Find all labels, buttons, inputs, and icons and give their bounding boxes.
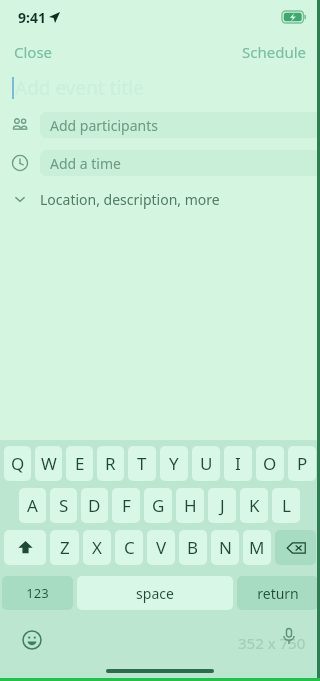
button[interactable]: E <box>66 446 93 481</box>
staticText: 352 x 750 <box>238 633 306 653</box>
button[interactable]: Schedule <box>228 36 320 68</box>
staticText: F <box>122 494 131 517</box>
staticText: Schedule <box>242 42 306 62</box>
staticText: Close <box>14 42 53 62</box>
staticText: 123 <box>26 584 49 602</box>
button[interactable]: S <box>50 488 77 523</box>
staticText: V <box>156 536 167 559</box>
staticText: G <box>152 494 165 517</box>
staticText: Add a time <box>50 154 121 173</box>
staticText: A <box>27 494 38 517</box>
button[interactable]: W <box>35 446 62 481</box>
button[interactable]: Z <box>50 530 79 565</box>
staticText: D <box>88 494 101 517</box>
button[interactable]: Location, description, more <box>0 186 320 212</box>
button[interactable]: space <box>77 576 233 610</box>
button[interactable]: F <box>112 488 140 523</box>
staticText: 9:41 <box>18 8 46 27</box>
button[interactable]: H <box>176 488 204 523</box>
staticText: I <box>235 452 241 475</box>
button[interactable]: Add participants <box>0 112 320 138</box>
staticText: C <box>124 536 135 559</box>
button[interactable]: Close <box>0 36 67 68</box>
staticText: L <box>282 494 291 517</box>
staticText: B <box>187 536 199 559</box>
button[interactable]: P <box>288 446 316 481</box>
button[interactable]: Q <box>4 446 31 481</box>
staticText: Y <box>169 452 179 475</box>
button[interactable]: Add a time <box>0 150 320 176</box>
staticText: Q <box>11 452 25 475</box>
button[interactable]: 123 <box>2 576 73 610</box>
button[interactable]: G <box>144 488 172 523</box>
button[interactable]: M <box>243 530 271 565</box>
staticText: E <box>75 452 85 475</box>
button[interactable]: Emoji <box>22 630 42 650</box>
button[interactable]: I <box>224 446 252 481</box>
button[interactable]: J <box>208 488 236 523</box>
staticText: P <box>297 452 308 475</box>
button[interactable]: Shift <box>4 530 46 565</box>
button[interactable]: C <box>115 530 143 565</box>
button[interactable]: T <box>128 446 156 481</box>
staticText: O <box>263 452 277 475</box>
button[interactable]: U <box>192 446 220 481</box>
button[interactable]: O <box>256 446 284 481</box>
button[interactable]: R <box>97 446 124 481</box>
button[interactable]: N <box>211 530 239 565</box>
button[interactable]: Y <box>160 446 188 481</box>
button[interactable]: Backspace <box>275 530 316 565</box>
button[interactable]: B <box>179 530 207 565</box>
button[interactable]: K <box>240 488 268 523</box>
staticText: return <box>257 584 299 603</box>
staticText: S <box>59 494 69 517</box>
staticText: T <box>137 452 147 475</box>
staticText: W <box>41 452 57 475</box>
staticText: Z <box>60 536 70 559</box>
staticText: M <box>249 536 265 559</box>
staticText: K <box>249 494 260 517</box>
button[interactable]: V <box>147 530 175 565</box>
staticText: U <box>200 452 213 475</box>
staticText: N <box>219 536 232 559</box>
button[interactable]: L <box>272 488 300 523</box>
staticText: space <box>136 584 174 603</box>
staticText: Location, description, more <box>40 190 220 209</box>
staticText: Add participants <box>50 116 158 135</box>
staticText: H <box>184 494 197 517</box>
button[interactable]: Dictate <box>280 627 298 645</box>
staticText: J <box>220 494 225 517</box>
button[interactable]: Add event title <box>0 70 320 106</box>
button[interactable]: X <box>83 530 111 565</box>
button[interactable]: A <box>19 488 46 523</box>
button[interactable]: return <box>237 576 318 610</box>
button[interactable]: D <box>81 488 108 523</box>
staticText: X <box>92 536 102 559</box>
staticText: Add event title <box>15 75 144 101</box>
staticText: R <box>105 452 116 475</box>
